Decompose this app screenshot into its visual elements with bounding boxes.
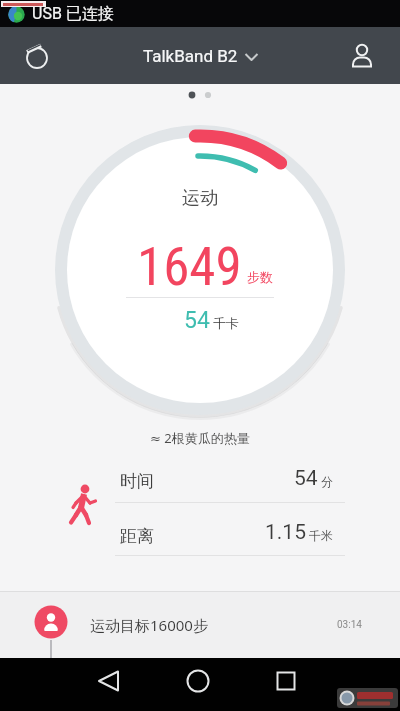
- staticText: 步数: [247, 269, 273, 285]
- button[interactable]: 时间: [115, 466, 345, 496]
- button[interactable]: [265, 665, 307, 697]
- staticText: 运动: [182, 187, 218, 210]
- staticText: 分: [321, 474, 333, 489]
- staticText: 1.15: [265, 520, 306, 545]
- button[interactable]: [88, 665, 130, 697]
- staticText: TalkBand B2: [143, 46, 238, 66]
- staticText: 距离: [120, 526, 154, 547]
- button[interactable]: TalkBand B2: [143, 46, 258, 66]
- staticText: 时间: [120, 471, 154, 492]
- staticText: 1649: [137, 236, 242, 298]
- button[interactable]: [341, 35, 383, 77]
- button[interactable]: [15, 35, 57, 77]
- staticText: USB 已连接: [32, 4, 114, 24]
- staticText: 03:14: [337, 619, 362, 631]
- staticText: 运动目标16000步: [90, 615, 208, 635]
- button[interactable]: 距离: [115, 521, 345, 551]
- button[interactable]: [177, 665, 219, 697]
- staticText: 54: [294, 466, 318, 491]
- staticText: 千米: [309, 528, 333, 543]
- staticText: ≈ 2根黄瓜的热量: [150, 429, 250, 447]
- button[interactable]: 运动目标16000步: [0, 591, 400, 658]
- staticText: 54: [184, 307, 210, 334]
- staticText: 千卡: [213, 315, 239, 331]
